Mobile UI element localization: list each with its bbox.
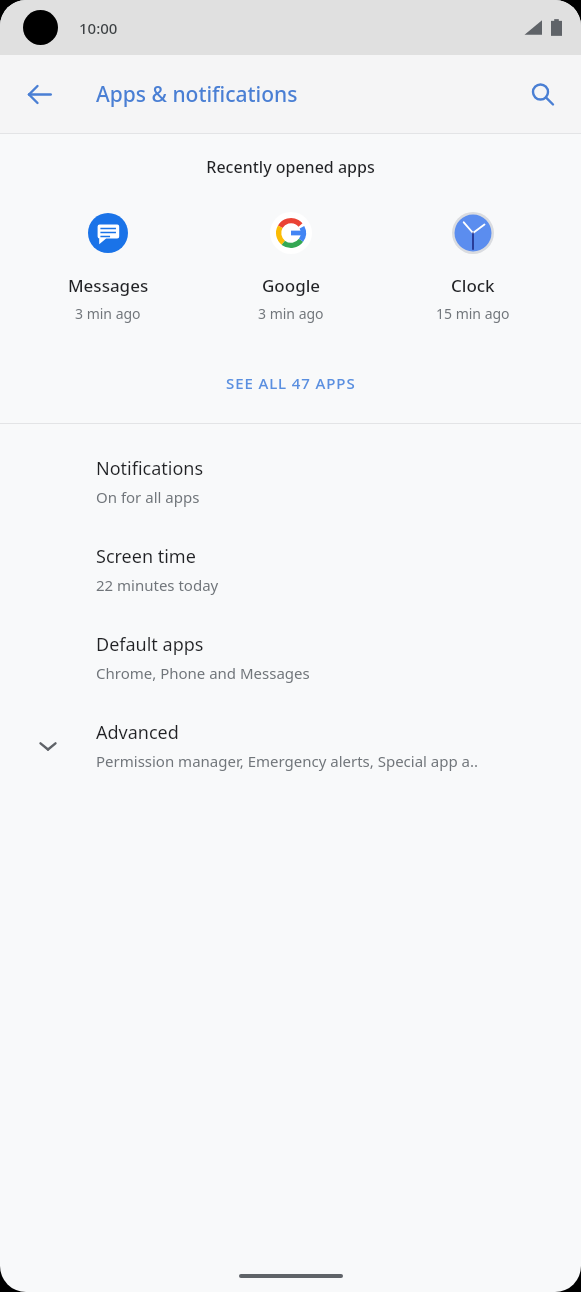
staticText: Clock bbox=[451, 274, 495, 297]
staticText: On for all apps bbox=[96, 487, 200, 507]
button[interactable]: Notifications bbox=[0, 438, 581, 526]
staticText: SEE ALL 47 APPS bbox=[226, 373, 356, 393]
staticText: 10:00 bbox=[79, 18, 118, 38]
button[interactable]: Default apps bbox=[0, 614, 581, 702]
button[interactable]: Messages bbox=[33, 208, 183, 327]
button[interactable]: Search bbox=[517, 69, 567, 119]
button[interactable]: Clock bbox=[398, 208, 548, 327]
button[interactable]: SEE ALL 47 APPS bbox=[0, 363, 581, 403]
staticText: Messages bbox=[68, 274, 149, 297]
staticText: Apps & notifications bbox=[96, 80, 298, 109]
staticText: Screen time bbox=[96, 544, 196, 569]
button[interactable]: Google bbox=[216, 208, 366, 327]
staticText: 3 min ago bbox=[75, 304, 141, 323]
staticText: Permission manager, Emergency alerts, Sp… bbox=[96, 751, 479, 771]
staticText: 15 min ago bbox=[436, 304, 510, 323]
button[interactable]: Back bbox=[14, 69, 64, 119]
button[interactable]: Screen time bbox=[0, 526, 581, 614]
staticText: 22 minutes today bbox=[96, 575, 219, 595]
staticText: Google bbox=[262, 274, 321, 297]
button[interactable]: Advanced bbox=[0, 702, 581, 790]
staticText: Advanced bbox=[96, 720, 179, 745]
staticText: Default apps bbox=[96, 632, 204, 657]
staticText: Recently opened apps bbox=[0, 156, 581, 178]
staticText: 3 min ago bbox=[258, 304, 324, 323]
staticText: Chrome, Phone and Messages bbox=[96, 663, 310, 683]
staticText: Notifications bbox=[96, 456, 204, 481]
